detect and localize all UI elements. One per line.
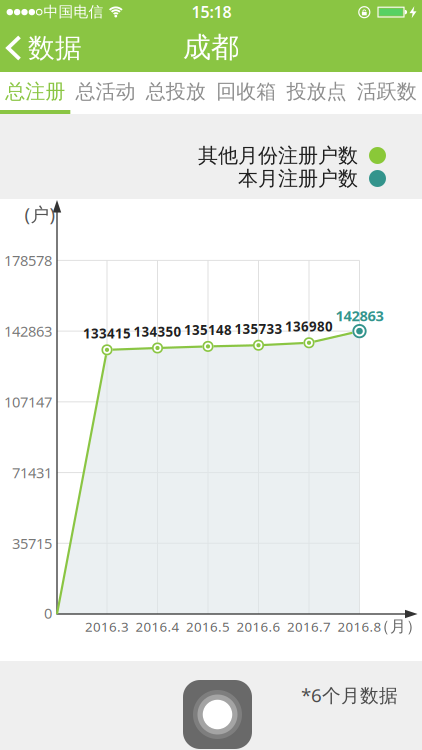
button[interactable]: 总注册 — [0, 72, 70, 110]
staticText: 107147 — [4, 392, 52, 412]
staticText: 134350 — [133, 323, 181, 340]
staticText: 35715 — [12, 533, 52, 553]
button[interactable]: 总投放 — [141, 72, 211, 110]
staticText: 133415 — [83, 324, 131, 342]
staticText: 2016.8 — [337, 618, 381, 635]
staticText: (户) — [24, 202, 55, 226]
staticText: 15:18 — [191, 1, 231, 22]
staticText: 2016.7 — [287, 618, 331, 635]
staticText: 活跃数 — [357, 79, 417, 104]
staticText: 2016.6 — [236, 618, 280, 635]
staticText: 2016.4 — [135, 618, 179, 635]
staticText: 回收箱 — [216, 79, 276, 104]
staticText: 2016.3 — [85, 618, 129, 635]
staticText: 136980 — [285, 317, 333, 335]
staticText: 71431 — [12, 463, 52, 482]
staticText: 142863 — [335, 306, 383, 325]
staticText: 142863 — [4, 321, 52, 341]
button[interactable]: 活跃数 — [352, 72, 422, 110]
staticText: 178578 — [4, 251, 52, 270]
staticText: 2016.5 — [186, 618, 230, 635]
staticText: 135733 — [234, 320, 282, 338]
staticText: 0 — [44, 603, 52, 623]
staticText: 135148 — [184, 321, 232, 339]
button[interactable]: 回收箱 — [211, 72, 281, 110]
staticText: 其他月份注册户数 — [198, 143, 358, 168]
button[interactable]: 数据 — [2, 26, 86, 70]
staticText: 中国电信 — [43, 3, 103, 21]
staticText: *6个月数据 — [301, 683, 398, 707]
staticText: 成都 — [183, 30, 239, 65]
staticText: 数据 — [28, 32, 82, 64]
button[interactable]: 总活动 — [70, 72, 141, 110]
staticText: 本月注册户数 — [238, 166, 358, 191]
staticText: （月） — [374, 617, 422, 636]
button[interactable]: 投放点 — [281, 72, 352, 110]
staticText: 投放点 — [286, 79, 346, 104]
button[interactable]: AssistiveTouch — [183, 680, 252, 749]
staticText: 总投放 — [146, 79, 206, 104]
staticText: 总注册 — [5, 79, 65, 104]
staticText: 总活动 — [75, 79, 135, 104]
